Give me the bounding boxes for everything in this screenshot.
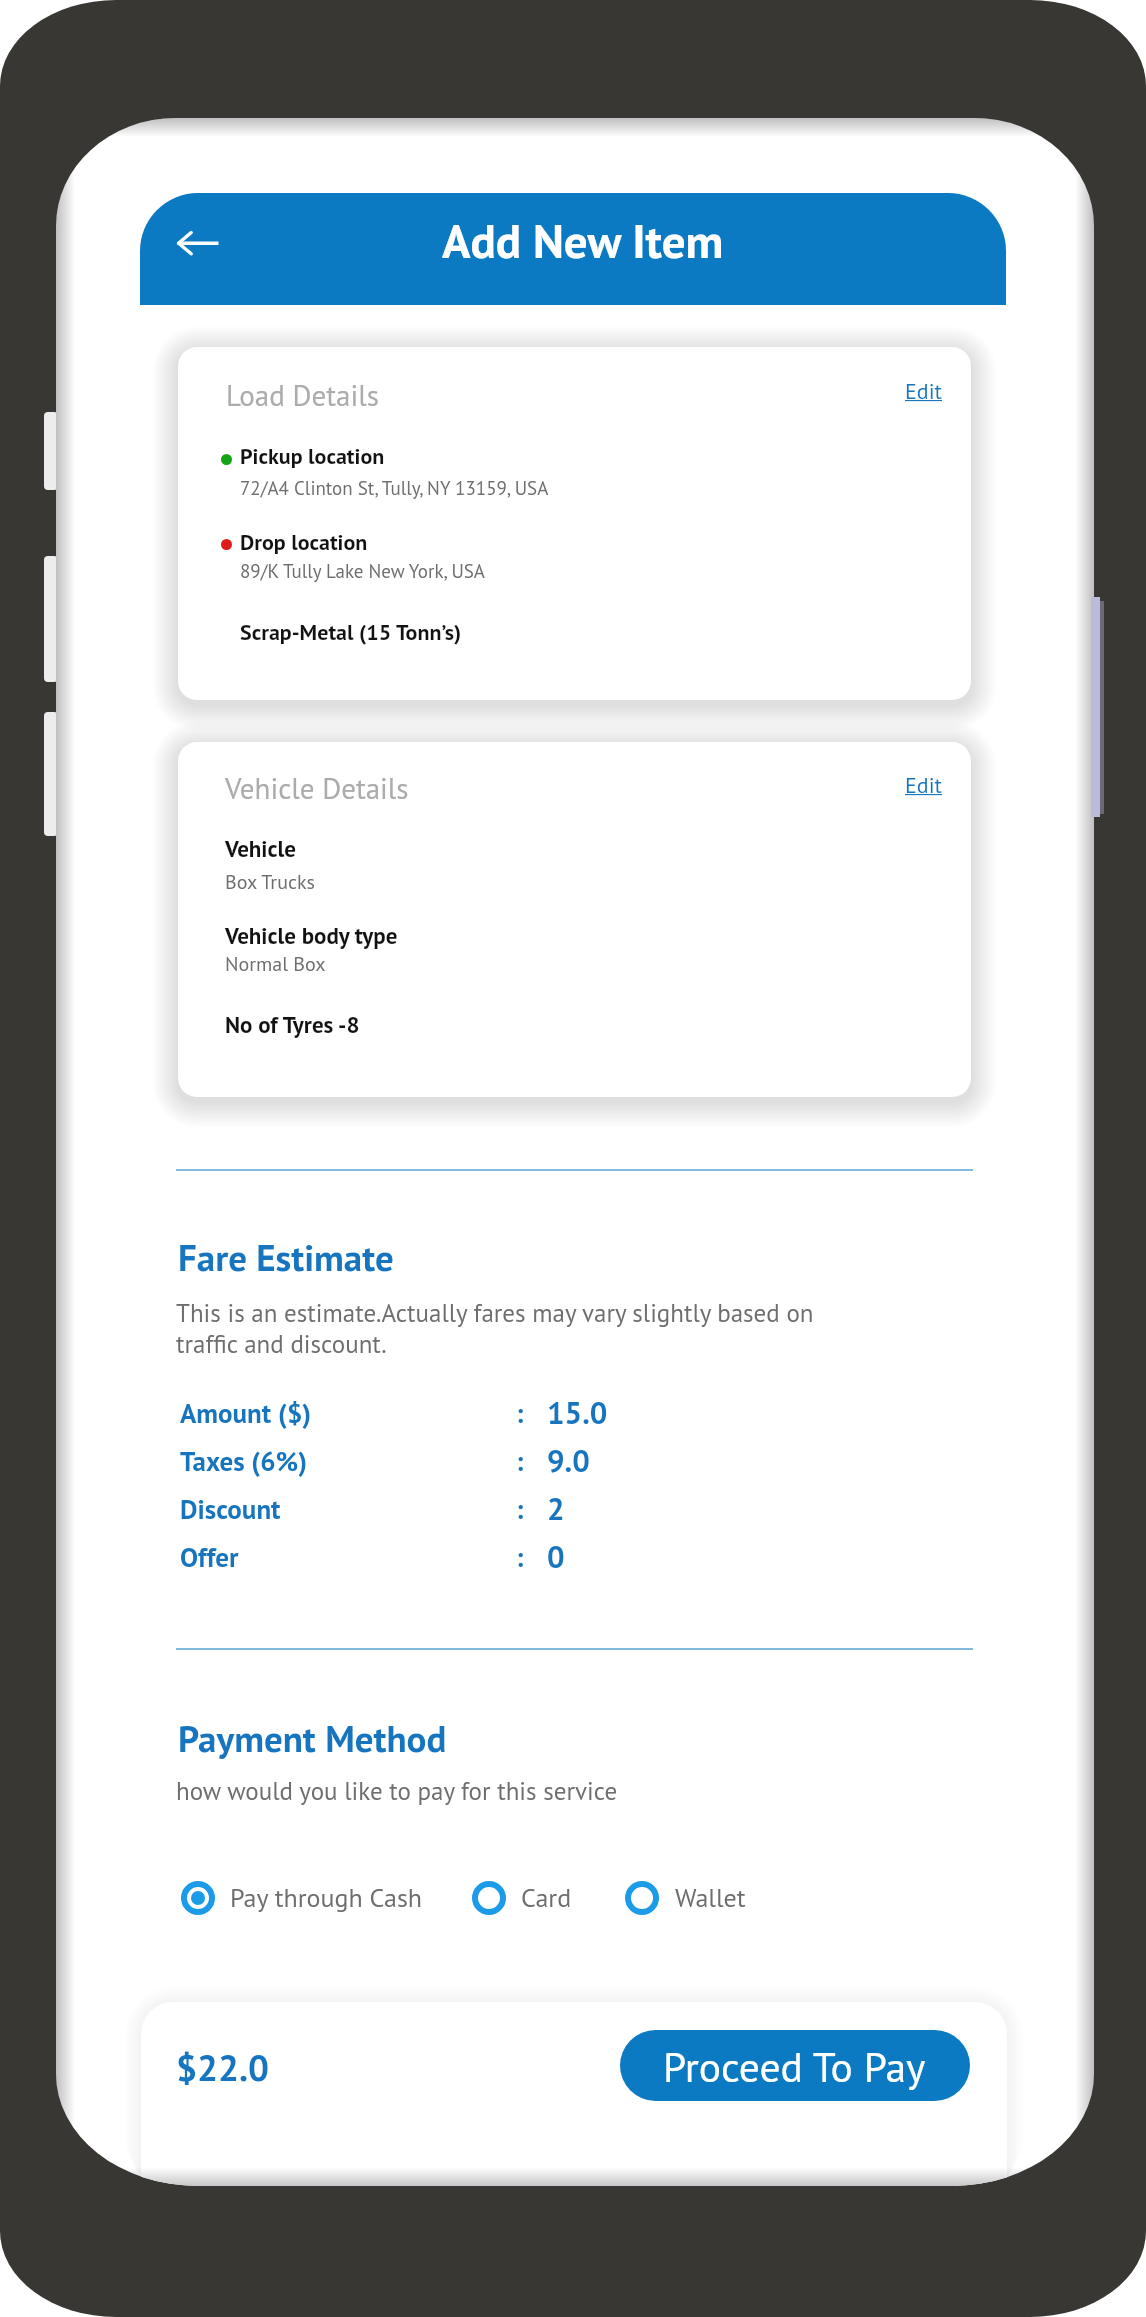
staticText: Vehicle Details [225, 769, 409, 807]
staticText: Box Trucks [225, 869, 315, 895]
staticText: : [516, 1492, 524, 1527]
button[interactable]: Wallet [622, 1878, 746, 1918]
button[interactable] [140, 193, 1006, 305]
staticText: Amount ($) [180, 1396, 312, 1431]
staticText: 89/K Tully Lake New York, USA [240, 559, 485, 584]
button[interactable] [178, 347, 971, 700]
staticText: Taxes (6%) [180, 1444, 308, 1479]
button[interactable] [180, 1396, 620, 1432]
staticText: Offer [180, 1540, 239, 1575]
staticText: how would you like to pay for this servi… [176, 1775, 618, 1807]
staticText: Drop location [240, 528, 368, 556]
button[interactable] [180, 1492, 620, 1528]
button[interactable]: Back [166, 214, 228, 274]
button[interactable]: Edit [905, 771, 942, 799]
button[interactable] [620, 2030, 970, 2101]
button[interactable] [180, 1540, 620, 1576]
staticText: 9.0 [547, 1440, 590, 1480]
staticText: : [516, 1540, 524, 1575]
staticText: 0 [547, 1536, 565, 1576]
staticText: : [516, 1396, 524, 1431]
staticText: Normal Box [225, 951, 326, 977]
staticText: Discount [180, 1492, 281, 1527]
staticText: Payment Method [178, 1714, 447, 1762]
staticText: Scrap-Metal (15 Tonn’s) [240, 618, 462, 646]
staticText: Pickup location [240, 442, 385, 470]
staticText: : [516, 1444, 524, 1479]
staticText: Proceed To Pay [663, 2040, 926, 2094]
staticText: 2 [547, 1488, 565, 1528]
staticText: 72/A4 Clinton St, Tully, NY 13159, USA [240, 476, 549, 501]
staticText: Vehicle [225, 834, 296, 864]
staticText: Pay through Cash [230, 1881, 423, 1915]
button[interactable] [180, 1444, 620, 1480]
staticText: Vehicle body type [225, 921, 398, 951]
staticText: Edit [905, 771, 942, 799]
button[interactable]: Edit [905, 377, 942, 405]
staticText: No of Tyres -8 [225, 1010, 360, 1040]
button[interactable] [178, 742, 971, 1097]
staticText: This is an estimate.Actually fares may v… [176, 1297, 814, 1360]
staticText: Card [521, 1881, 572, 1915]
staticText: Add New Item [442, 210, 724, 271]
staticText: Fare Estimate [178, 1233, 394, 1281]
staticText: $22.0 [176, 2043, 270, 2091]
staticText: Load Details [226, 376, 379, 414]
button[interactable]: Card [469, 1878, 572, 1918]
staticText: Edit [905, 377, 942, 405]
button[interactable]: Pay through Cash [178, 1878, 423, 1918]
staticText: Wallet [675, 1881, 746, 1915]
staticText: 15.0 [547, 1392, 608, 1432]
